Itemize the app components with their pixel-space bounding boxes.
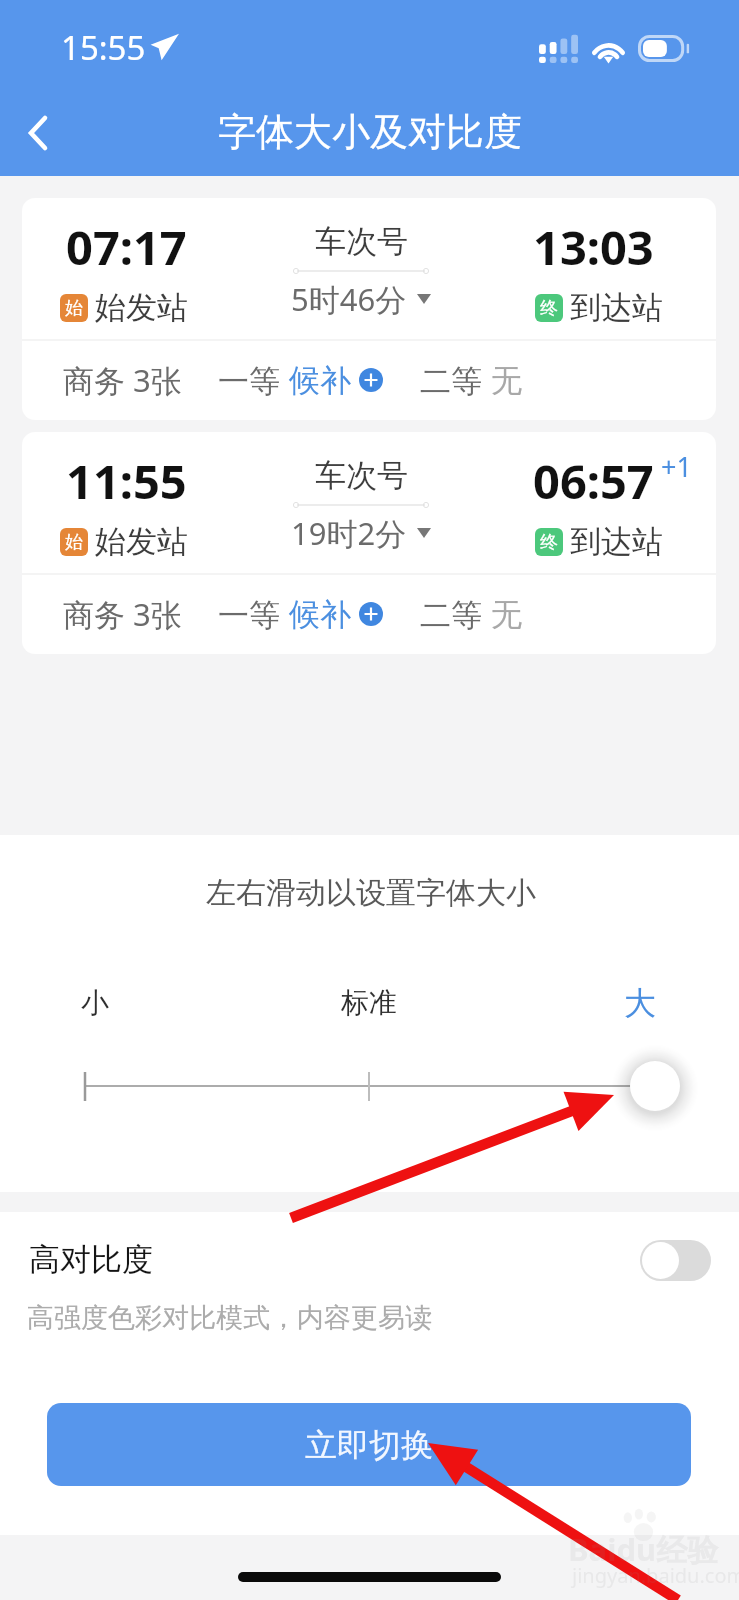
button[interactable]: 11:55 [22,432,716,654]
staticText: 始 [65,531,83,554]
staticText: 5时46分 [291,278,407,320]
staticText: 立即切换 [305,1425,433,1465]
button[interactable]: Font size slider [605,1036,705,1136]
staticText: 终 [540,297,558,320]
staticText: 始 [65,297,83,320]
staticText: 到达站 [570,288,663,327]
staticText: 二等 [420,593,491,635]
staticText: 06:57 [533,449,654,513]
staticText: 无 [491,361,522,400]
staticText: jingyan.baidu.com [572,1562,739,1589]
button[interactable]: Back [2,97,74,169]
staticText: 始发站 [95,288,188,327]
staticText: 小 [81,985,109,1020]
staticText: 高对比度 [29,1240,153,1279]
staticText: 终 [540,531,558,554]
button[interactable]: 07:17 [22,198,716,420]
staticText: 始发站 [95,522,188,561]
staticText: Baidu经验 [568,1528,719,1570]
staticText: 到达站 [570,522,663,561]
staticText: 候补 [289,361,351,400]
staticText: 候补 [289,595,351,634]
staticText: 19时2分 [291,512,407,554]
button[interactable]: 高对比度 [0,1225,739,1297]
staticText: 车次号 [315,456,408,495]
staticText: 商务 3张 [63,593,182,635]
staticText: 07:17 [66,215,187,279]
staticText: 二等 [420,359,491,401]
staticText: 无 [491,595,522,634]
staticText: 一等 [218,359,289,401]
staticText: 字体大小及对比度 [218,108,522,156]
staticText: 11:55 [66,449,187,513]
staticText: 左右滑动以设置字体大小 [206,874,536,912]
staticText: 高强度色彩对比模式，内容更易读 [27,1301,432,1335]
staticText: +1 [661,448,692,485]
button[interactable]: 立即切换 [47,1403,691,1486]
staticText: 标准 [341,985,397,1020]
staticText: 一等 [218,593,289,635]
staticText: 商务 3张 [63,359,182,401]
staticText: 大 [624,983,656,1023]
staticText: 车次号 [315,222,408,261]
staticText: 15:55 [61,25,146,70]
button[interactable]: High contrast toggle [640,1240,711,1281]
staticText: 13:03 [533,215,654,279]
